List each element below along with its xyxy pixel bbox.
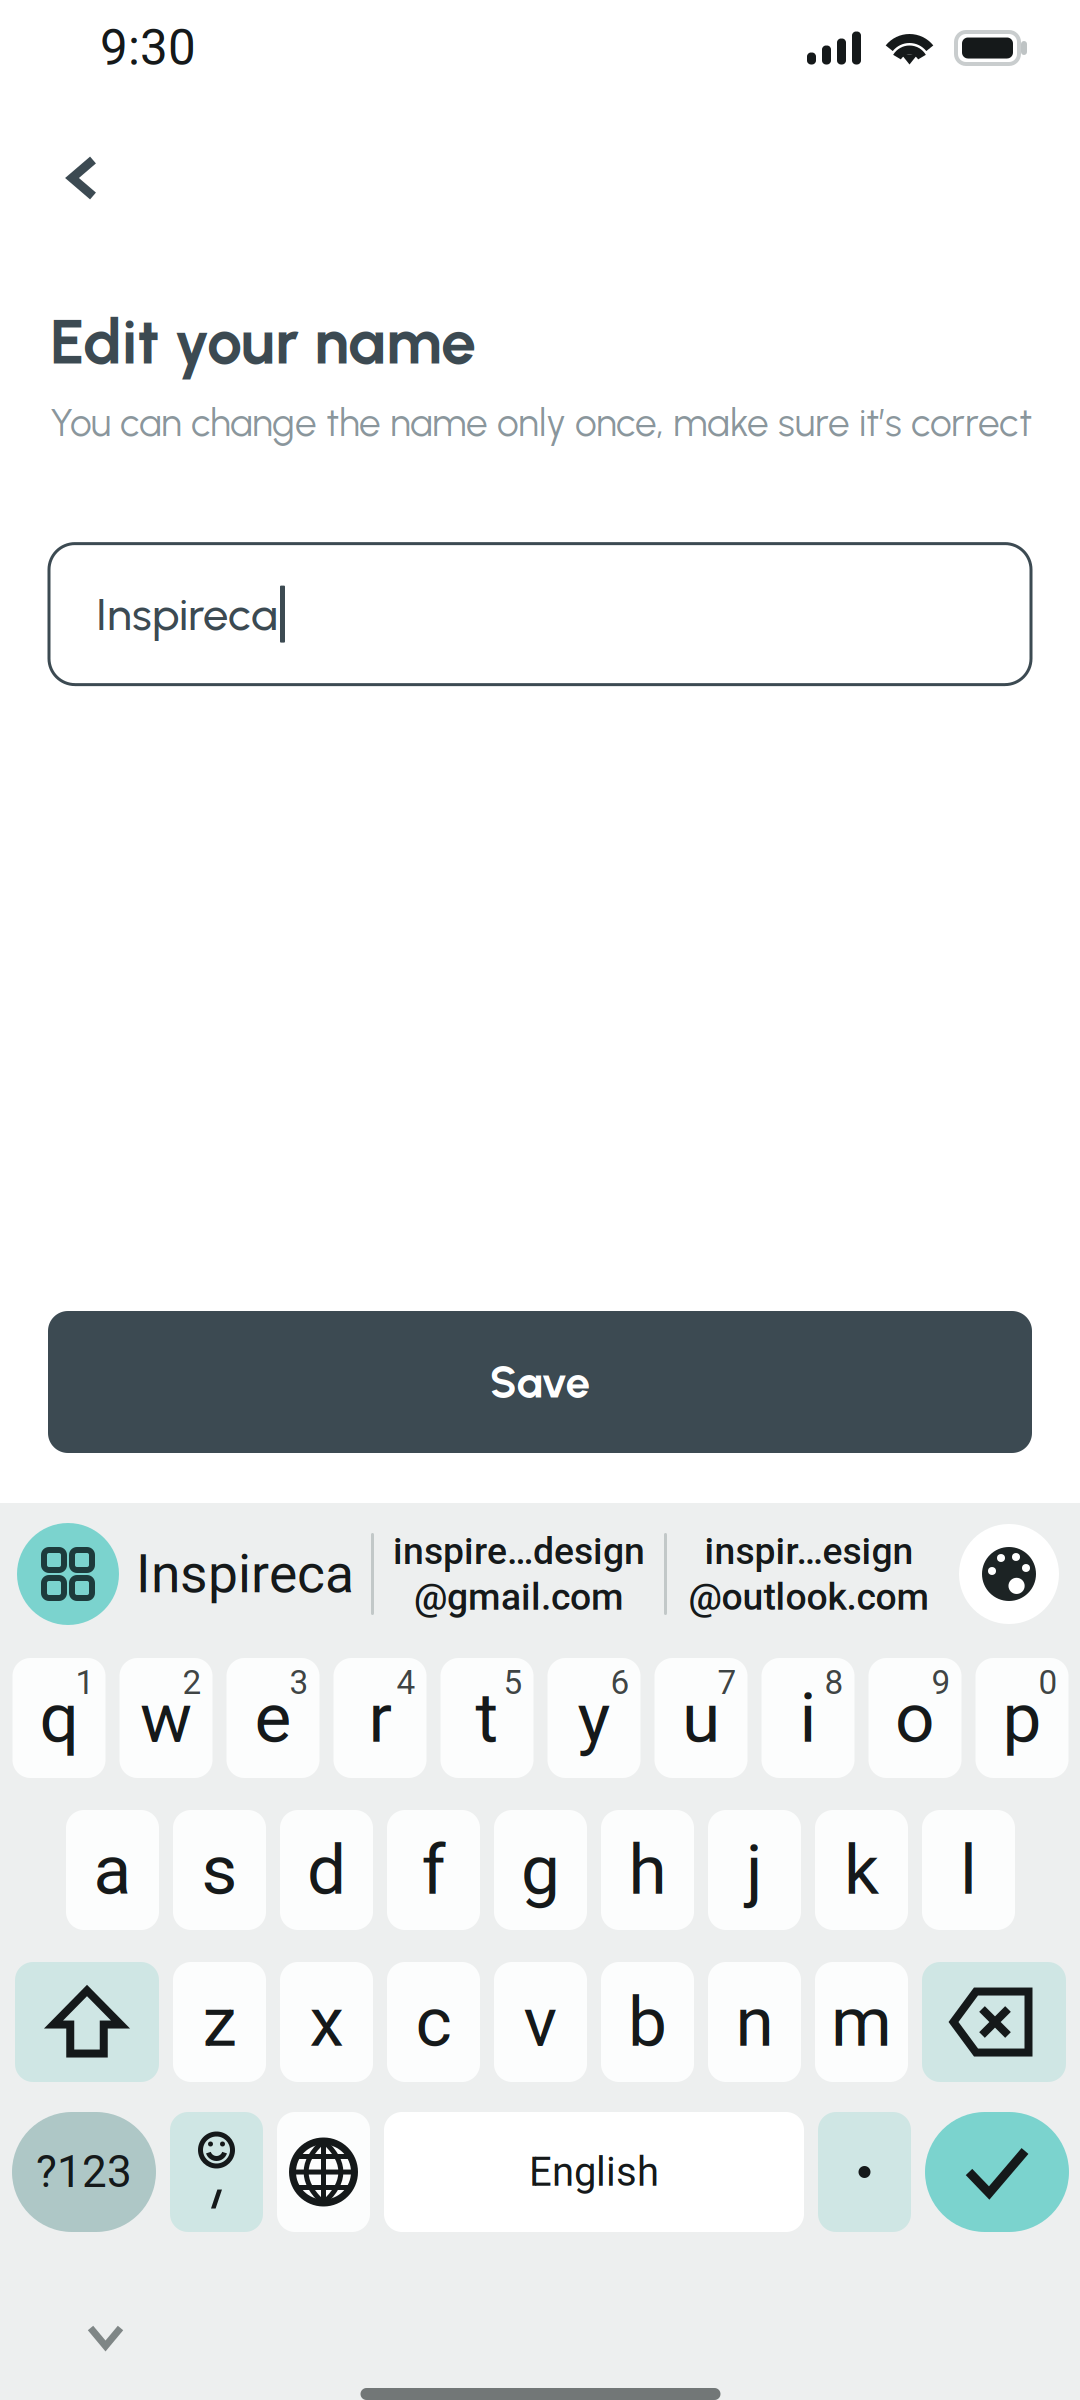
staticText: p — [1002, 1677, 1041, 1759]
staticText: w — [140, 1677, 192, 1759]
button[interactable]: Hide keyboard — [60, 2302, 150, 2372]
staticText: o — [895, 1677, 935, 1759]
staticText: l — [960, 1829, 977, 1911]
button[interactable]: h — [601, 1810, 694, 1930]
staticText: i — [799, 1677, 816, 1759]
staticText: 2 — [182, 1663, 201, 1702]
staticText: inspire…design — [393, 1529, 645, 1573]
button[interactable]: m — [815, 1962, 908, 2082]
staticText: f — [421, 1829, 445, 1911]
button[interactable]: inspire…design — [374, 1503, 664, 1645]
button[interactable]: l — [922, 1810, 1015, 1930]
button[interactable]: i — [761, 1658, 854, 1778]
button[interactable]: o — [868, 1658, 961, 1778]
button[interactable]: k — [815, 1810, 908, 1930]
staticText: 8 — [824, 1663, 843, 1702]
button[interactable]: Emoji — [170, 2112, 263, 2232]
staticText: n — [735, 1981, 773, 2063]
staticText: ?123 — [36, 2146, 132, 2198]
button[interactable]: z — [173, 1962, 266, 2082]
staticText: v — [523, 1981, 557, 2063]
staticText: b — [628, 1981, 667, 2063]
staticText: Inspireca — [136, 1543, 354, 1605]
staticText: 4 — [396, 1663, 415, 1702]
staticText: @gmail.com — [414, 1575, 624, 1619]
button[interactable]: Period — [818, 2112, 911, 2232]
button[interactable]: y — [547, 1658, 640, 1778]
button[interactable]: Shift — [15, 1962, 159, 2082]
staticText: 3 — [289, 1663, 308, 1702]
staticText: Save — [489, 1356, 590, 1408]
button[interactable]: Enter — [925, 2112, 1069, 2232]
button[interactable]: e — [226, 1658, 319, 1778]
staticText: y — [577, 1677, 610, 1759]
staticText: r — [368, 1677, 391, 1759]
staticText: 1 — [75, 1663, 94, 1702]
button[interactable]: t — [440, 1658, 533, 1778]
button[interactable]: v — [494, 1962, 587, 2082]
button[interactable]: f — [387, 1810, 480, 1930]
staticText: z — [202, 1981, 236, 2063]
staticText: Inspireca — [96, 587, 278, 641]
staticText: a — [93, 1829, 131, 1911]
button[interactable]: u — [654, 1658, 747, 1778]
staticText: h — [628, 1829, 666, 1911]
button[interactable]: Inspireca — [119, 1503, 371, 1645]
staticText: Edit your name — [50, 304, 476, 379]
staticText: q — [39, 1677, 78, 1759]
button[interactable]: ?123 — [12, 2112, 156, 2232]
staticText: s — [201, 1829, 237, 1911]
staticText: g — [521, 1829, 560, 1911]
staticText: x — [309, 1981, 343, 2063]
button[interactable]: b — [601, 1962, 694, 2082]
button[interactable]: j — [708, 1810, 801, 1930]
staticText: u — [682, 1677, 720, 1759]
button[interactable]: n — [708, 1962, 801, 2082]
button[interactable]: p — [975, 1658, 1068, 1778]
staticText: 9 — [931, 1663, 950, 1702]
button[interactable]: q — [12, 1658, 105, 1778]
staticText: @outlook.com — [688, 1575, 929, 1619]
button[interactable]: Backspace — [922, 1962, 1066, 2082]
button[interactable]: Change language — [277, 2112, 370, 2232]
staticText: j — [746, 1829, 763, 1911]
button[interactable]: w — [119, 1658, 212, 1778]
staticText: 0 — [1038, 1663, 1057, 1702]
button[interactable]: Back — [36, 130, 129, 226]
staticText: 7 — [717, 1663, 736, 1702]
staticText: e — [254, 1677, 291, 1759]
button[interactable]: r — [333, 1658, 426, 1778]
button[interactable]: d — [280, 1810, 373, 1930]
button[interactable]: x — [280, 1962, 373, 2082]
staticText: inspir…esign — [704, 1529, 913, 1573]
staticText: d — [307, 1829, 346, 1911]
staticText: k — [844, 1829, 879, 1911]
button[interactable]: a — [66, 1810, 159, 1930]
button[interactable]: inspir…esign — [667, 1503, 951, 1645]
button[interactable]: c — [387, 1962, 480, 2082]
button[interactable]: English — [384, 2112, 804, 2232]
staticText: 6 — [610, 1663, 629, 1702]
staticText: c — [415, 1981, 451, 2063]
button[interactable]: s — [173, 1810, 266, 1930]
staticText: 5 — [503, 1663, 522, 1702]
button[interactable]: g — [494, 1810, 587, 1930]
staticText: You can change the name only once, make … — [50, 399, 1032, 446]
button[interactable]: Save — [48, 1311, 1032, 1453]
staticText: English — [529, 2149, 659, 2195]
staticText: 9:30 — [100, 19, 196, 77]
staticText: m — [831, 1981, 892, 2063]
staticText: t — [475, 1677, 498, 1759]
button[interactable]: Themes — [959, 1524, 1059, 1624]
